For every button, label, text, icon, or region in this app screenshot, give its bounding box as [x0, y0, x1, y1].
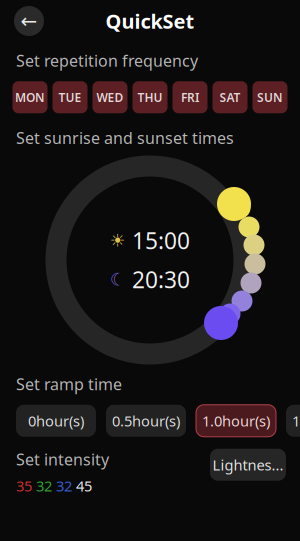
button[interactable]: 1.0hour(s)	[196, 405, 276, 437]
button[interactable]: SAT	[212, 81, 247, 113]
staticText: Set intensity	[16, 449, 109, 470]
staticText: 20:30	[132, 264, 190, 295]
button[interactable]: Back	[12, 4, 46, 38]
staticText: 0.5hour(s)	[112, 411, 180, 430]
button[interactable]: 0.5hour(s)	[106, 405, 186, 437]
staticText: SUN	[257, 89, 283, 105]
staticText: ☀	[110, 231, 126, 250]
staticText: ←	[20, 10, 37, 32]
staticText: FRI	[181, 89, 199, 105]
staticText: TUE	[58, 89, 81, 105]
button[interactable]: Lightnes...	[210, 449, 286, 481]
staticText: 1.5hour(s)	[292, 411, 300, 430]
button[interactable]: FRI	[172, 81, 207, 113]
staticText: 32	[56, 476, 72, 495]
staticText: 1.0hour(s)	[202, 411, 270, 430]
staticText: Lightnes...	[212, 455, 283, 474]
button[interactable]: TUE	[52, 81, 87, 113]
button[interactable]: MON	[12, 81, 47, 113]
staticText: 15:00	[132, 225, 190, 255]
staticText: 35	[16, 476, 32, 495]
button[interactable]: 0hour(s)	[16, 405, 96, 437]
staticText: QuickSet	[105, 8, 194, 34]
staticText: Set repetition frequency	[16, 50, 198, 71]
button[interactable]: SUN	[252, 81, 287, 113]
staticText: ☾	[110, 270, 126, 289]
staticText: 45	[76, 476, 92, 495]
staticText: THU	[137, 89, 162, 105]
button[interactable]: THU	[132, 81, 167, 113]
button[interactable]: WED	[92, 81, 127, 113]
staticText: Set ramp time	[16, 373, 122, 395]
staticText: 32	[36, 476, 52, 495]
staticText: Set sunrise and sunset times	[16, 127, 234, 148]
button[interactable]: 1.5hour(s)	[286, 405, 300, 437]
staticText: MON	[15, 89, 45, 105]
staticText: WED	[96, 89, 123, 105]
staticText: 0hour(s)	[28, 411, 84, 430]
staticText: SAT	[219, 89, 240, 105]
